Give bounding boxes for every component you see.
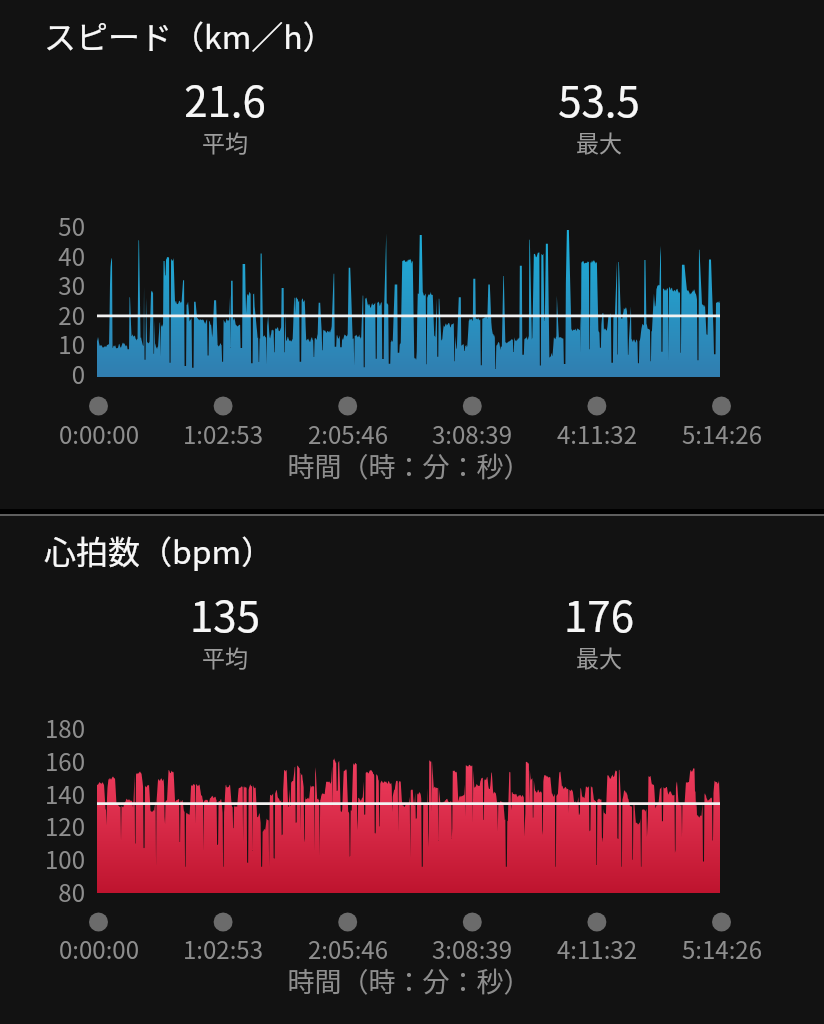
staticText: 135 <box>145 583 305 644</box>
staticText: 0 <box>0 356 85 391</box>
button[interactable]: Heart rate chart, average 135 bpm, max 1… <box>0 516 824 1024</box>
staticText: 最大 <box>519 640 679 673</box>
button[interactable]: Speed chart, average 21.6 km per hour, m… <box>0 0 824 509</box>
staticText: 時間（時：分：秒） <box>209 961 609 1000</box>
staticText: 2:05:46 <box>268 416 428 451</box>
staticText: 140 <box>0 776 85 811</box>
staticText: 4:11:32 <box>517 931 677 966</box>
staticText: 20 <box>0 297 85 332</box>
staticText: 53.5 <box>519 68 679 129</box>
staticText: 1:02:53 <box>143 416 303 451</box>
staticText: 100 <box>0 841 85 876</box>
staticText: スピード（km／h） <box>44 12 335 58</box>
staticText: 5:14:26 <box>642 931 802 966</box>
staticText: 2:05:46 <box>268 931 428 966</box>
staticText: 10 <box>0 326 85 361</box>
staticText: 0:00:00 <box>19 931 179 966</box>
staticText: 時間（時：分：秒） <box>209 446 609 485</box>
staticText: 40 <box>0 238 85 273</box>
staticText: 160 <box>0 743 85 778</box>
staticText: 0:00:00 <box>19 416 179 451</box>
staticText: 平均 <box>145 125 305 158</box>
staticText: 50 <box>0 208 85 243</box>
staticText: 176 <box>519 583 679 644</box>
staticText: 180 <box>0 710 85 745</box>
staticText: 120 <box>0 808 85 843</box>
staticText: 30 <box>0 267 85 302</box>
staticText: 5:14:26 <box>642 416 802 451</box>
staticText: 1:02:53 <box>143 931 303 966</box>
staticText: 最大 <box>519 125 679 158</box>
staticText: 平均 <box>145 640 305 673</box>
staticText: 80 <box>0 874 85 909</box>
staticText: 3:08:39 <box>392 931 552 966</box>
staticText: 心拍数（bpm） <box>44 527 274 573</box>
other: Speed chart, average 21.6 km per hour, m… <box>0 0 824 509</box>
staticText: 3:08:39 <box>392 416 552 451</box>
other: Heart rate chart, average 135 bpm, max 1… <box>0 516 824 1024</box>
staticText: 21.6 <box>145 68 305 129</box>
staticText: 4:11:32 <box>517 416 677 451</box>
